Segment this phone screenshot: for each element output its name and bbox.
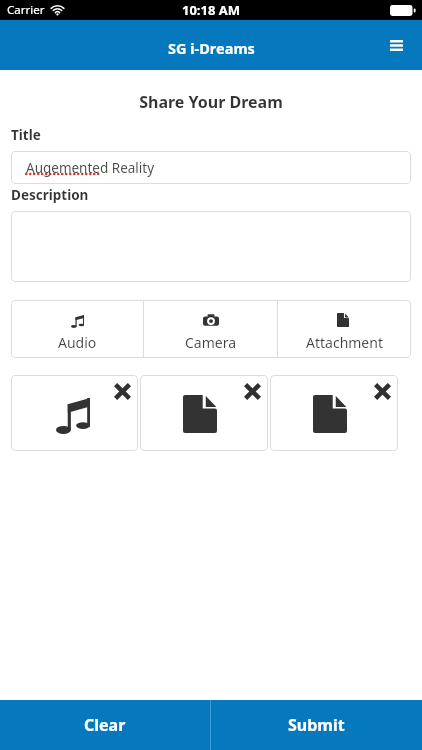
staticText: Submit bbox=[288, 714, 345, 736]
staticText: Camera bbox=[185, 333, 237, 352]
staticText: Attachment bbox=[306, 333, 383, 352]
staticText: Clear bbox=[84, 714, 126, 736]
staticText: Description bbox=[11, 186, 89, 204]
button[interactable]: Remove attachment bbox=[270, 375, 398, 451]
staticText: 10:18 AM bbox=[182, 1, 241, 19]
button[interactable]: Camera bbox=[144, 300, 277, 358]
button[interactable]: Clear bbox=[0, 700, 210, 750]
staticText: Audio bbox=[58, 333, 97, 352]
staticText: Title bbox=[11, 126, 41, 144]
button[interactable] bbox=[11, 211, 411, 282]
button[interactable]: Remove attachment bbox=[112, 381, 133, 402]
staticText: Augemented Reality bbox=[26, 159, 155, 177]
button[interactable]: Submit bbox=[211, 700, 422, 750]
button[interactable]: Remove attachment bbox=[242, 381, 263, 402]
button[interactable]: Menu bbox=[376, 20, 422, 70]
button[interactable]: Audio bbox=[11, 300, 143, 358]
staticText: Carrier bbox=[7, 2, 45, 18]
button[interactable]: Remove attachment bbox=[11, 375, 138, 451]
staticText: SG i-Dreams bbox=[168, 38, 255, 58]
button[interactable]: Remove attachment bbox=[140, 375, 268, 451]
button[interactable]: Attachment bbox=[278, 300, 411, 358]
button[interactable]: Augemented Reality bbox=[11, 151, 411, 184]
staticText: Share Your Dream bbox=[0, 91, 422, 113]
button[interactable]: Remove attachment bbox=[372, 381, 393, 402]
